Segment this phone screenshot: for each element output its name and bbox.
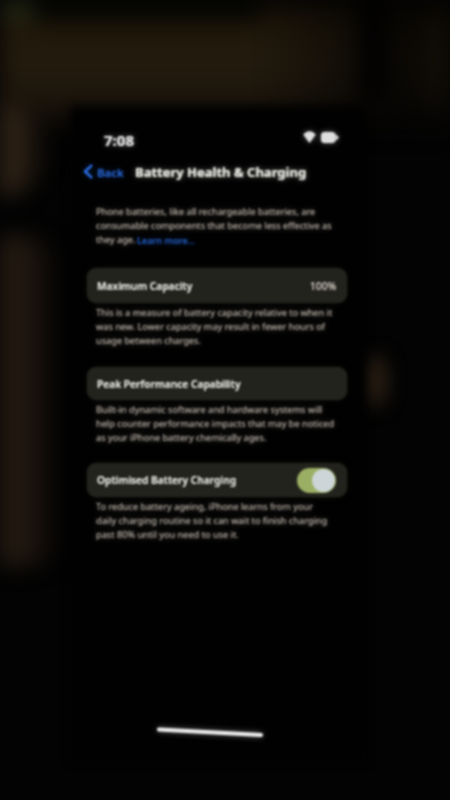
staticText: To reduce battery ageing, iPhone learns …: [96, 500, 328, 541]
staticText: Built-in dynamic software and hardware s…: [96, 403, 335, 444]
button[interactable]: Optimised Battery Charging: [87, 463, 347, 497]
button[interactable]: Learn more...: [137, 234, 196, 247]
staticText: Phone batteries, like all rechargeable b…: [96, 205, 332, 246]
staticText: Peak Performance Capability: [97, 377, 241, 391]
staticText: Maximum Capacity: [97, 279, 193, 293]
staticText: Maximum Capacity: [97, 279, 193, 293]
button[interactable]: Maximum Capacity: [87, 268, 347, 303]
button[interactable]: Peak Performance Capability: [87, 367, 347, 400]
staticText: Optimised Battery Charging: [97, 473, 237, 487]
staticText: To reduce battery ageing, iPhone learns …: [96, 500, 328, 541]
staticText: Built-in dynamic software and hardware s…: [96, 403, 335, 444]
other: Wi-Fi: [303, 131, 316, 143]
staticText: Battery Health & Charging: [135, 163, 307, 181]
staticText: Battery Health & Charging: [135, 163, 307, 181]
other: Battery: [321, 132, 339, 143]
button[interactable]: Maximum Capacity: [87, 268, 347, 303]
staticText: Phone batteries, like all rechargeable b…: [96, 205, 332, 246]
button[interactable]: Back: [82, 159, 130, 185]
other: Battery: [321, 132, 339, 143]
other: Wi-Fi: [303, 131, 316, 143]
button[interactable]: Optimised Battery Charging: [297, 468, 336, 493]
staticText: 7:08: [104, 130, 134, 150]
staticText: Back: [97, 165, 124, 181]
staticText: 100%: [310, 279, 337, 293]
staticText: 100%: [310, 279, 337, 293]
staticText: 7:08: [104, 130, 134, 150]
button[interactable]: Optimised Battery Charging: [87, 463, 347, 497]
staticText: This is a measure of battery capacity re…: [96, 306, 333, 347]
button[interactable]: Optimised Battery Charging: [297, 468, 336, 493]
staticText: Back: [97, 165, 124, 181]
staticText: Peak Performance Capability: [97, 377, 241, 391]
staticText: Optimised Battery Charging: [97, 473, 237, 487]
button[interactable]: Back: [82, 159, 130, 185]
staticText: This is a measure of battery capacity re…: [96, 306, 333, 347]
button[interactable]: Learn more...: [137, 234, 196, 247]
button[interactable]: Peak Performance Capability: [87, 367, 347, 400]
